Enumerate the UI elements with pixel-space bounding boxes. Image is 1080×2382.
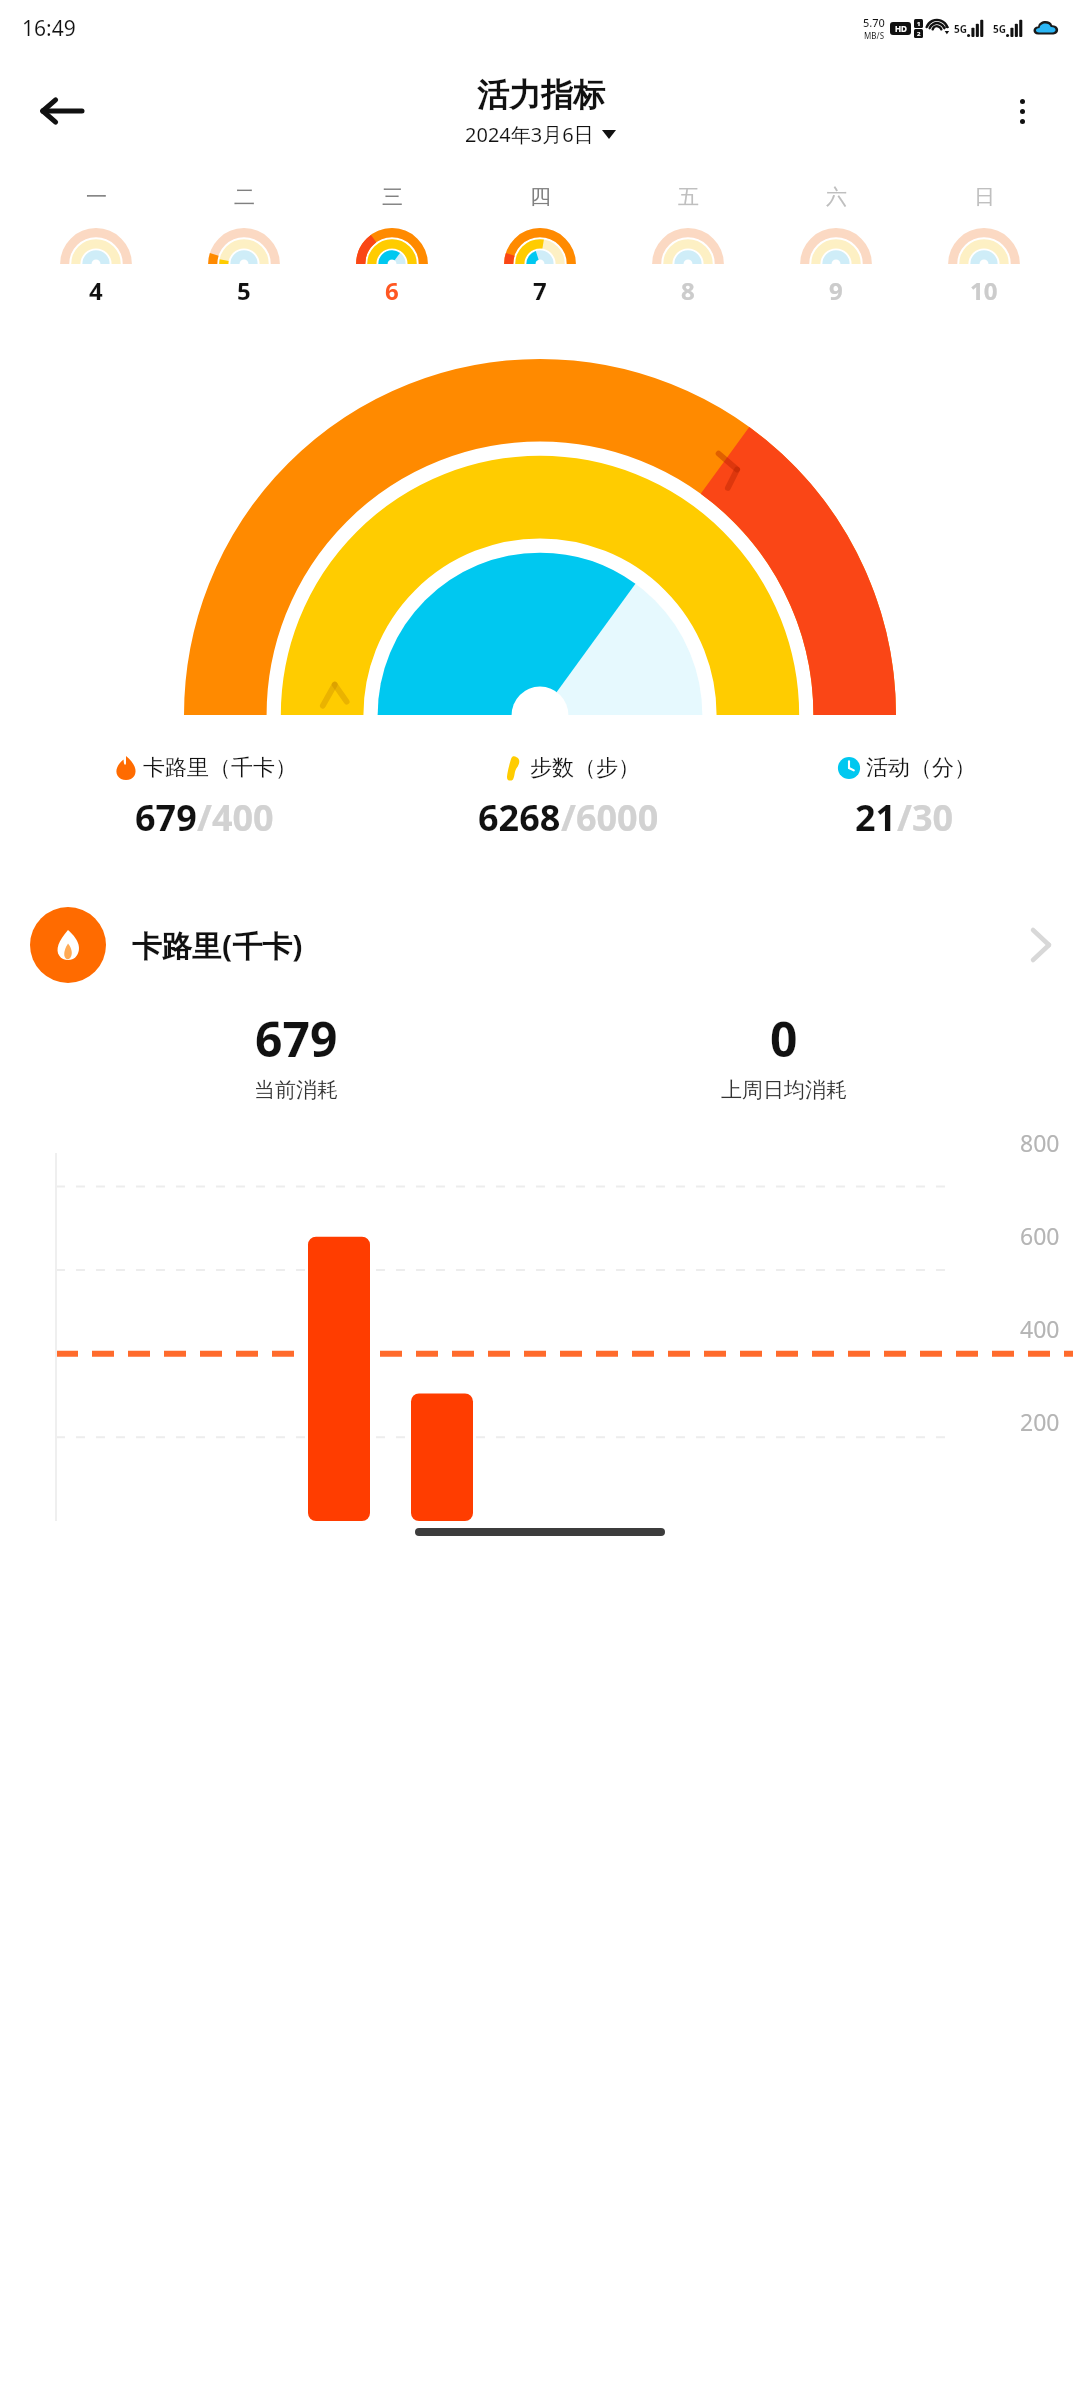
button[interactable]: Back (32, 81, 92, 141)
staticText: 二 (234, 184, 255, 210)
staticText: 679 (135, 793, 197, 842)
staticText: 六 (826, 184, 847, 210)
staticText: 三 (382, 184, 403, 210)
button[interactable]: Activity rings (184, 359, 896, 715)
button[interactable]: 六 (762, 184, 910, 307)
staticText: 步数（步） (530, 754, 640, 782)
staticText: 7 (533, 274, 547, 307)
staticText: 679 (255, 1006, 338, 1071)
staticText: 800 (1020, 1127, 1060, 1158)
staticText: MB/S (864, 30, 885, 41)
button[interactable]: 日 (910, 184, 1058, 307)
staticText: 2024年3月6日 (465, 121, 594, 148)
staticText: 日 (974, 184, 995, 210)
button[interactable]: 2024年3月6日 (465, 121, 616, 148)
staticText: 上周日均消耗 (721, 1077, 847, 1103)
button[interactable]: 活动（分） (749, 753, 1060, 842)
other: Details (1032, 929, 1050, 961)
button[interactable]: 一 (22, 184, 170, 307)
staticText: 9 (829, 274, 843, 307)
staticText: 400 (1020, 1313, 1060, 1344)
staticText: 五 (678, 184, 699, 210)
staticText: /400 (197, 793, 274, 842)
staticText: 4 (89, 274, 103, 307)
staticText: 600 (1020, 1220, 1060, 1251)
staticText: 5 (237, 274, 251, 307)
staticText: 6 (385, 274, 399, 307)
staticText: 21 (855, 793, 897, 842)
staticText: 16:49 (22, 14, 76, 43)
button[interactable]: 卡路里(千卡) (0, 900, 1080, 990)
staticText: 当前消耗 (254, 1077, 338, 1103)
button[interactable]: 四 (466, 184, 614, 307)
button[interactable]: More options (994, 83, 1050, 139)
staticText: 卡路里(千卡) (132, 925, 303, 966)
staticText: 活力指标 (477, 75, 605, 115)
staticText: 5G (954, 22, 967, 36)
staticText: 2 (917, 30, 921, 38)
staticText: 0 (770, 1006, 798, 1071)
staticText: HD (895, 23, 907, 34)
staticText: 四 (530, 184, 551, 210)
staticText: 卡路里（千卡） (143, 754, 297, 782)
staticText: 5G (993, 22, 1006, 36)
staticText: 5.70 (863, 15, 885, 30)
button[interactable]: 步数（步） (388, 753, 749, 842)
staticText: /30 (897, 793, 954, 842)
button[interactable]: 五 (614, 184, 762, 307)
staticText: 10 (970, 274, 998, 307)
staticText: 200 (1020, 1406, 1060, 1437)
staticText: 8 (681, 274, 695, 307)
staticText: 6268 (478, 793, 561, 842)
button[interactable]: 卡路里（千卡） (20, 753, 388, 842)
staticText: 一 (86, 184, 107, 210)
staticText: /6000 (561, 793, 659, 842)
staticText: 活动（分） (866, 754, 976, 782)
button[interactable]: 二 (170, 184, 318, 307)
button[interactable]: 三 (318, 184, 466, 307)
staticText: 1 (917, 20, 921, 28)
